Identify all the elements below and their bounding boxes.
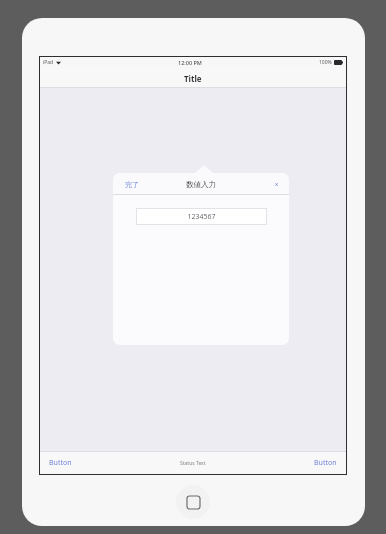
button[interactable]: Close	[273, 178, 281, 190]
staticText: Status Text	[180, 460, 206, 467]
staticText: iPad	[43, 59, 54, 66]
button[interactable]: Button	[312, 456, 339, 470]
button[interactable]: 完了	[123, 178, 141, 191]
staticText: 1234567	[187, 212, 216, 222]
staticText: 完了	[125, 180, 139, 189]
staticText: Button	[314, 458, 337, 468]
staticText: Button	[49, 458, 72, 468]
button[interactable]: Button	[47, 456, 74, 470]
button[interactable]: Home	[176, 485, 210, 519]
staticText: 100%	[319, 59, 332, 66]
staticText: Title	[184, 73, 202, 84]
button[interactable]: 1234567	[136, 208, 267, 225]
staticText: x	[275, 180, 279, 188]
staticText: 12:00 PM	[178, 59, 202, 66]
staticText: 数値入力	[186, 180, 216, 189]
